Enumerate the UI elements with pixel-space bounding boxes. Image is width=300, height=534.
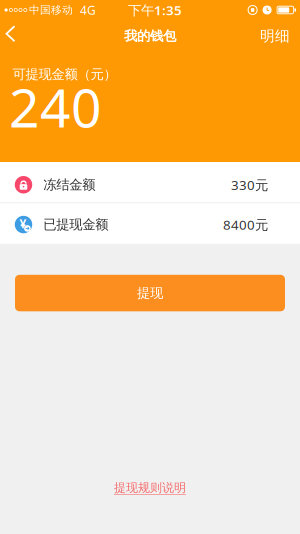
staticText: 240	[9, 71, 102, 142]
button[interactable]: 冻结金额	[0, 162, 300, 202]
staticText: 提现规则说明	[114, 480, 186, 495]
staticText: 8400元	[223, 216, 268, 233]
button[interactable]: 提现	[0, 275, 300, 311]
button[interactable]: Back	[0, 22, 16, 50]
staticText: 中国移动	[29, 3, 73, 16]
staticText: 4G	[80, 2, 96, 18]
button[interactable]: ¥	[0, 203, 300, 244]
staticText: ¥	[19, 216, 26, 231]
staticText: 提现	[137, 285, 163, 301]
staticText: 已提现金额	[43, 216, 108, 233]
staticText: 可提现金额（元）	[12, 66, 116, 82]
staticText: 330元	[231, 176, 268, 194]
button[interactable]: 明细	[260, 27, 300, 45]
staticText: 冻结金额	[43, 177, 95, 193]
staticText: 明细	[260, 27, 290, 45]
staticText: 我的钱包	[124, 28, 176, 44]
staticText: 下午1:35	[128, 1, 182, 19]
button[interactable]: 提现规则说明	[114, 480, 186, 495]
